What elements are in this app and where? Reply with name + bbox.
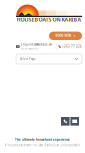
staticText: HOUSEBOATS ON KARIBA bbox=[16, 16, 81, 23]
button[interactable]: Houseboats on Kariba home bbox=[16, 4, 82, 22]
staticText: Select Page bbox=[20, 57, 36, 61]
staticText: enquiries@kariba.co.zw bbox=[21, 43, 52, 46]
staticText: A houseboat charter on Lake Kariba is an… bbox=[4, 143, 80, 147]
button[interactable]: BOOK NOW » bbox=[49, 32, 82, 40]
button[interactable]: Email us bbox=[70, 117, 79, 126]
button[interactable]: +263 77 226 bbox=[56, 45, 82, 48]
staticText: BOOK NOW » bbox=[55, 34, 75, 37]
button[interactable]: Call us bbox=[61, 117, 70, 126]
button[interactable]: Select Page bbox=[16, 54, 82, 64]
staticText: The ultimate houseboat experience bbox=[15, 138, 70, 141]
button[interactable]: enquiries@kariba.co.zw bbox=[16, 43, 52, 50]
staticText: +263 77 226 bbox=[62, 45, 82, 48]
staticText: Reservations bbox=[21, 47, 38, 50]
